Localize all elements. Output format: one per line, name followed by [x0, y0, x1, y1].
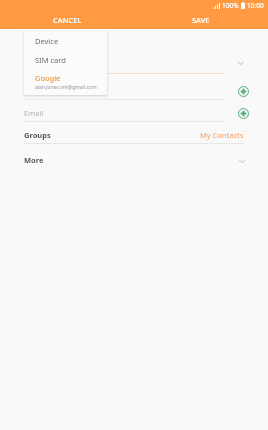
button[interactable]: Groups [0, 126, 268, 144]
staticText: Device [35, 36, 59, 46]
button[interactable]: CANCEL [0, 11, 134, 29]
staticText: Email [24, 108, 44, 118]
button[interactable]: Add Email [237, 107, 250, 120]
button[interactable]: Google [24, 69, 107, 95]
button[interactable]: SIM card [24, 50, 107, 69]
staticText: CANCEL [53, 15, 82, 25]
button[interactable]: More [0, 152, 268, 168]
staticText: alan.jones.vm@gmail.com [35, 84, 97, 91]
staticText: Phone number [24, 86, 77, 96]
button[interactable]: Add Phone number [237, 85, 250, 98]
staticText: Groups [24, 130, 51, 140]
staticText: My Contacts [200, 130, 244, 140]
other: Expand account [234, 56, 248, 70]
staticText: 10:00 [247, 1, 264, 10]
button[interactable]: SAVE [134, 11, 268, 29]
staticText: SIM card [35, 55, 66, 65]
button[interactable]: Expand account [0, 29, 268, 74]
staticText: 100% [222, 1, 239, 10]
button[interactable]: Email [0, 104, 268, 122]
button[interactable]: Phone number [0, 82, 268, 100]
staticText: SAVE [192, 15, 210, 25]
staticText: More [24, 155, 44, 165]
staticText: Google [35, 73, 61, 83]
button[interactable]: Device [24, 31, 107, 50]
